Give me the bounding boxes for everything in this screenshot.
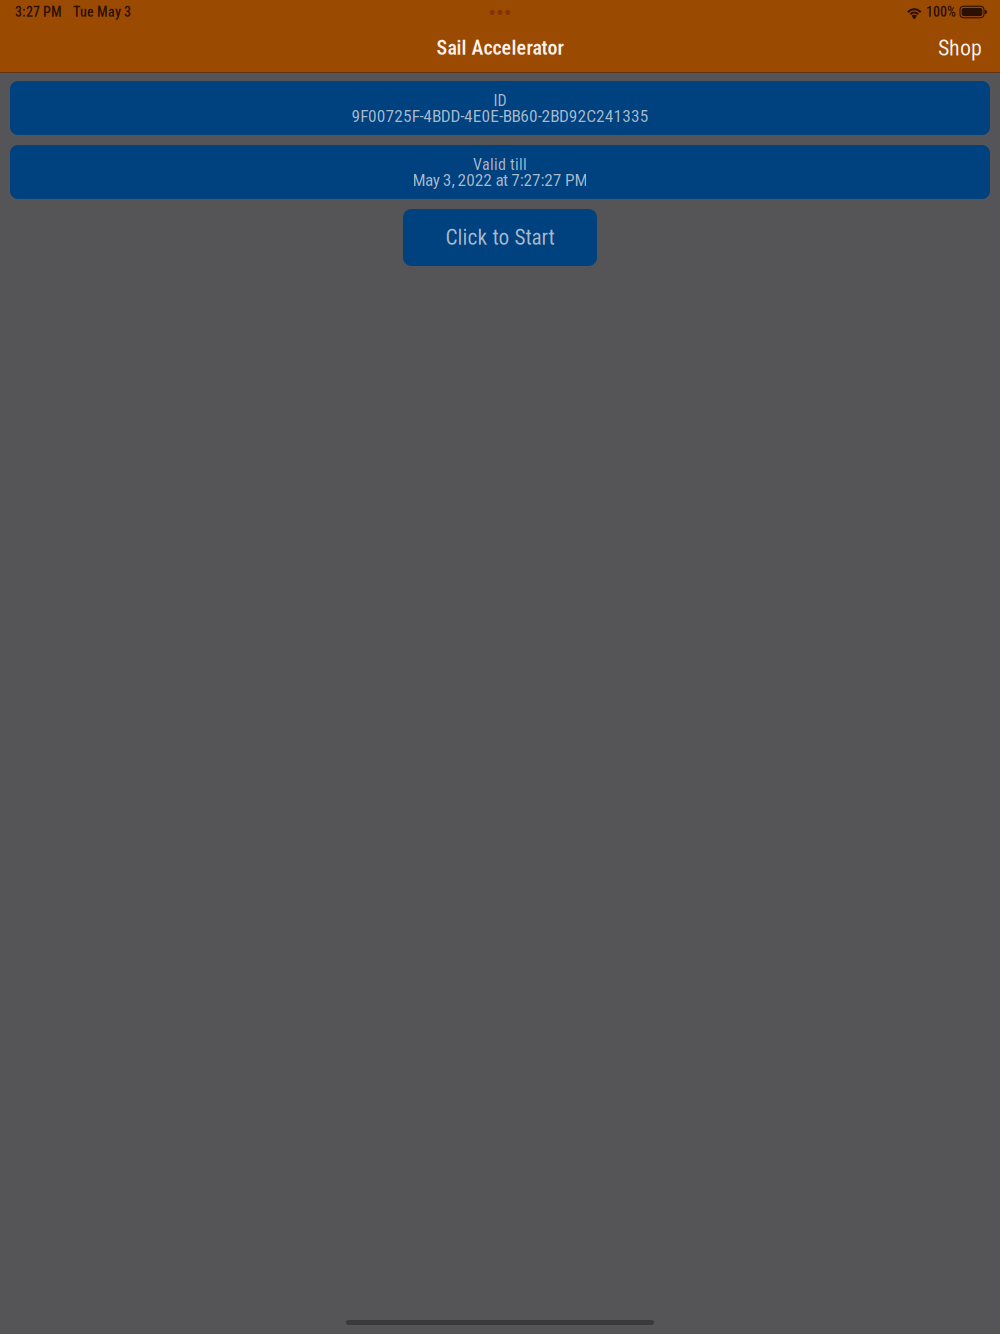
button[interactable]: Shop	[932, 29, 988, 67]
staticText: Valid till	[473, 155, 527, 174]
staticText: 3:27 PM	[15, 4, 62, 20]
staticText: ID	[493, 91, 506, 110]
staticText: Click to Start	[445, 225, 554, 250]
staticText: Shop	[938, 35, 982, 61]
button[interactable]: Click to Start	[403, 209, 597, 266]
staticText: Sail Accelerator	[436, 36, 563, 60]
staticText: 100%	[926, 4, 956, 20]
staticText: May 3, 2022 at 7:27:27 PM	[412, 170, 587, 190]
staticText: Tue May 3	[73, 4, 131, 20]
staticText: 9F00725F-4BDD-4E0E-BB60-2BD92C241335	[351, 106, 649, 126]
